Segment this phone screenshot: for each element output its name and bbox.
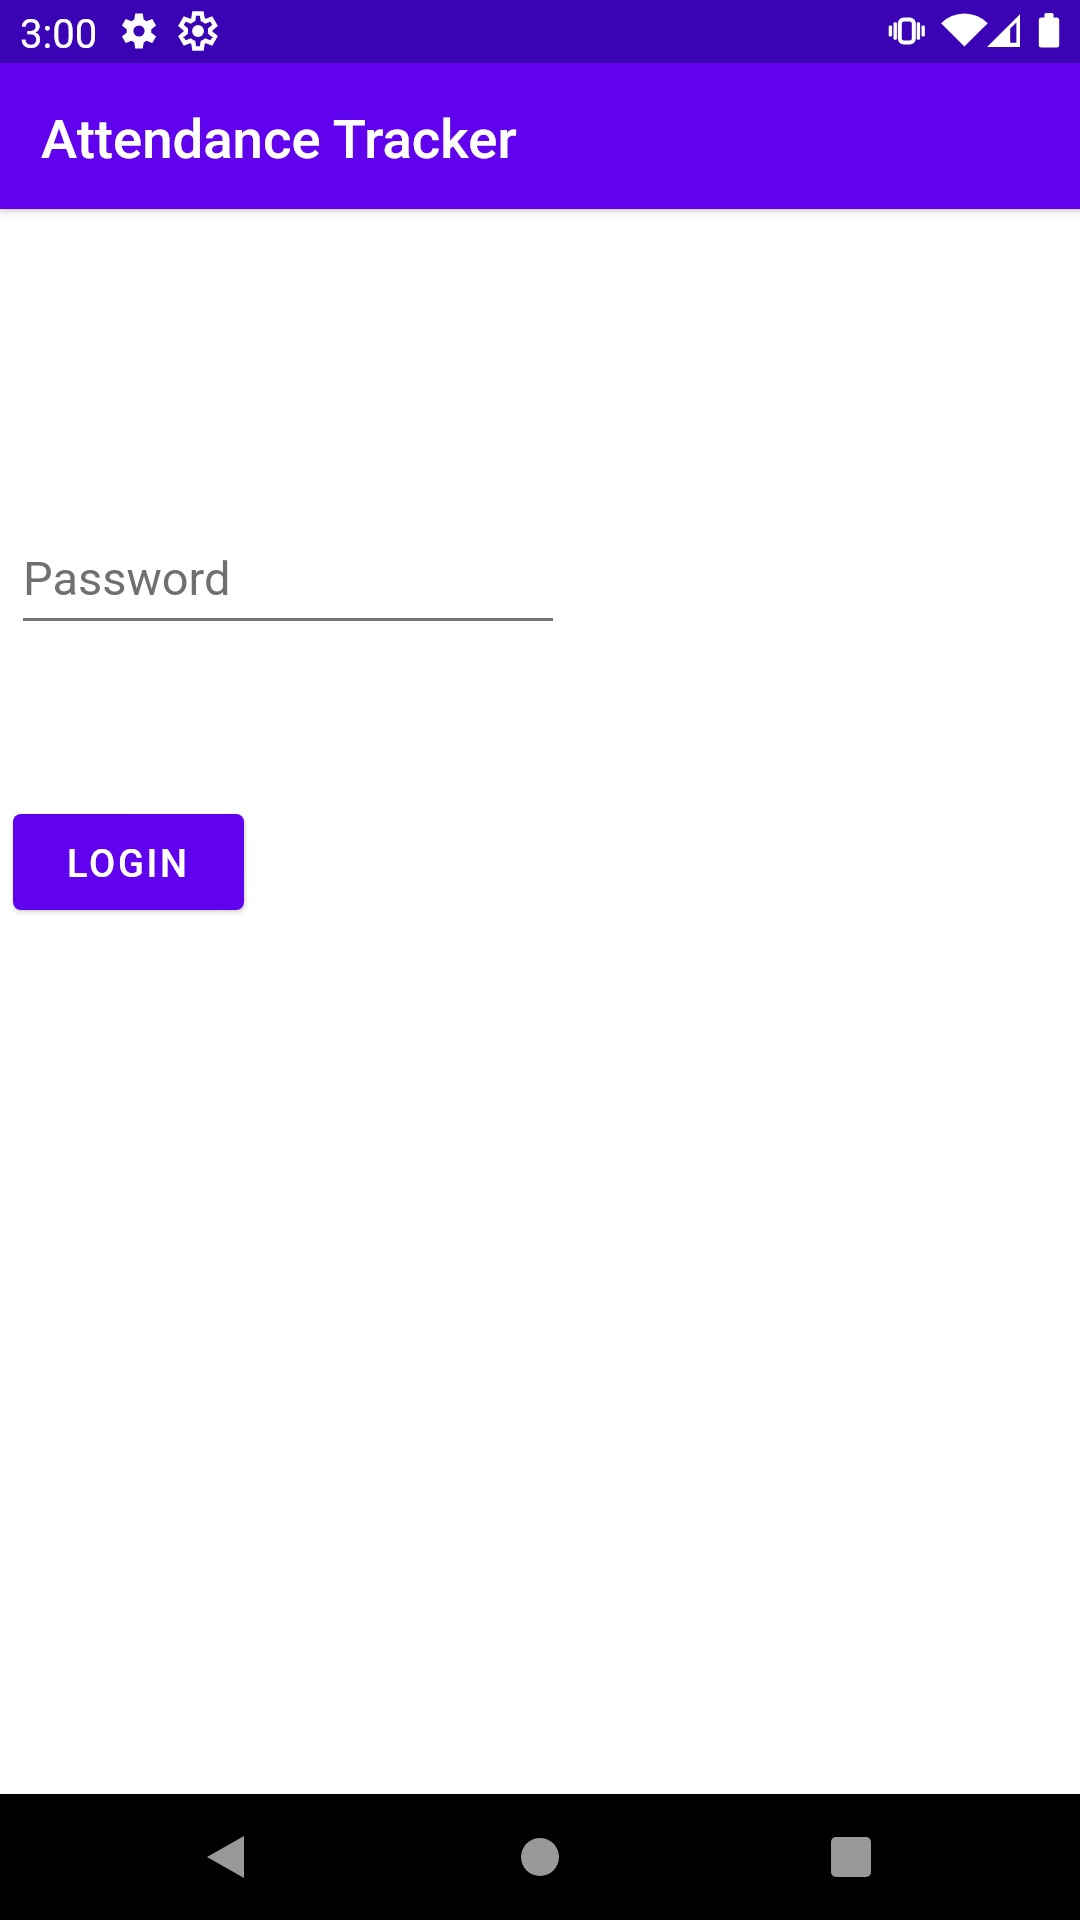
staticText: Password	[23, 551, 231, 606]
staticText: LOGIN	[67, 842, 190, 887]
button[interactable]: LOGIN	[13, 814, 244, 910]
staticText: 3:00	[20, 11, 98, 58]
staticText: Attendance Tracker	[41, 107, 517, 171]
button[interactable]: Back	[165, 1794, 315, 1920]
button[interactable]: Home	[465, 1794, 615, 1920]
button[interactable]: Password	[23, 540, 553, 621]
button[interactable]: Recent apps	[776, 1794, 926, 1920]
